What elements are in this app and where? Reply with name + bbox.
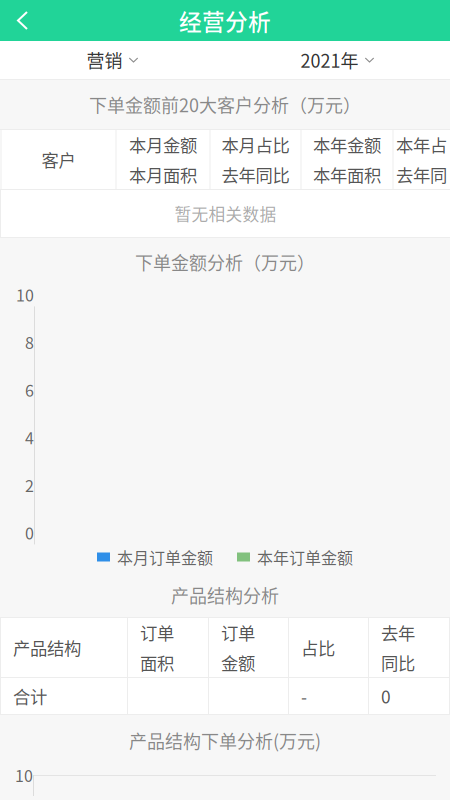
staticText: 本月金额 [129,132,197,157]
staticText: 本年面积 [313,162,381,187]
button[interactable]: 2021年 [225,41,450,79]
staticText: 0 [381,683,391,709]
staticText: 金额 [221,650,255,675]
staticText: 本年订单金额 [257,545,353,569]
staticText: 经营分析 [179,4,271,37]
staticText: 下单金额分析（万元） [135,249,315,275]
staticText: 产品结构分析 [171,582,279,608]
staticText: 本年金额 [313,132,381,157]
staticText: 去年同 [396,162,447,187]
staticText: 产品结构 [13,635,81,660]
staticText: 产品结构下单分析(万元) [129,727,321,754]
staticText: 去年 [381,620,415,645]
staticText: 同比 [381,650,415,675]
staticText: 面积 [140,650,174,675]
staticText: 10 [16,283,34,306]
staticText: - [301,683,307,709]
staticText: 占比 [301,635,335,660]
staticText: 本月订单金额 [117,545,213,569]
staticText: 营销 [86,47,122,73]
staticText: 本年占 [396,132,447,157]
staticText: 4 [25,426,34,449]
staticText: 本月面积 [129,162,197,187]
button[interactable]: Back [0,0,45,41]
staticText: 本月占比 [221,132,289,157]
staticText: 2021年 [300,47,358,73]
staticText: 去年同比 [221,162,289,187]
staticText: 2 [25,473,34,496]
staticText: 合计 [13,683,47,709]
staticText: 订单 [140,620,174,645]
staticText: 订单 [221,620,255,645]
staticText: 暂无相关数据 [174,201,276,225]
staticText: 8 [25,330,34,354]
staticText: 下单金额前20大客户分析（万元） [89,91,361,118]
staticText: 10 [15,763,33,787]
staticText: 客户 [41,147,75,172]
staticText: 6 [25,378,34,401]
staticText: 0 [25,521,34,544]
button[interactable]: 营销 [0,41,225,79]
